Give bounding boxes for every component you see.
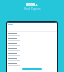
button[interactable] — [8, 43, 56, 48]
button[interactable] — [8, 48, 56, 53]
button[interactable] — [22, 68, 42, 70]
button[interactable] — [8, 58, 56, 63]
button[interactable] — [8, 63, 56, 68]
button[interactable] — [8, 38, 56, 43]
button[interactable] — [8, 33, 56, 38]
button[interactable] — [8, 53, 56, 58]
staticText: 8000+ — [26, 2, 38, 7]
staticText: Find Papers — [24, 7, 41, 11]
